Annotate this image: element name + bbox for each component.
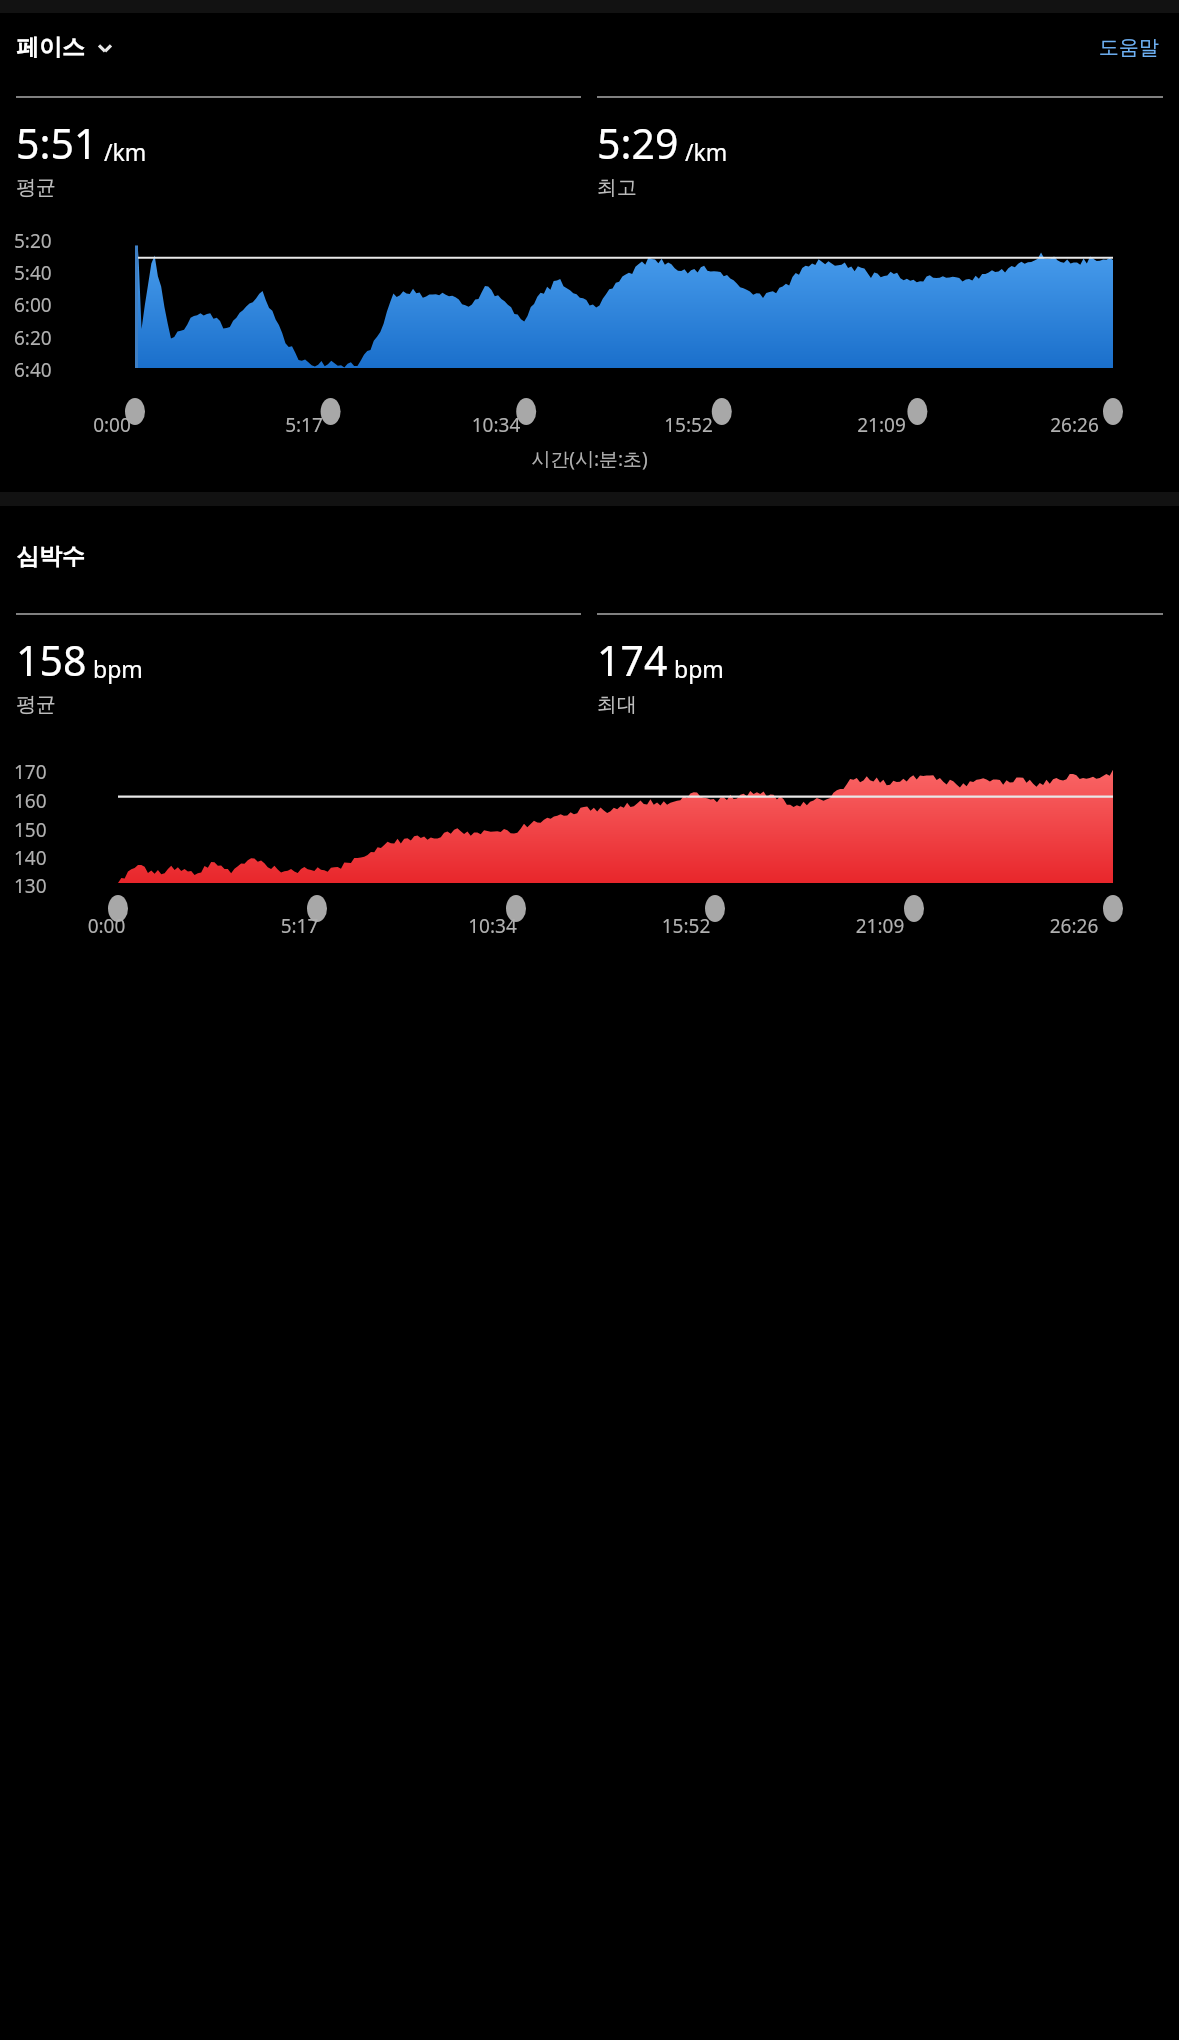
staticText: 160	[14, 788, 47, 814]
staticText: 15:52	[589, 913, 783, 939]
staticText: 174	[597, 632, 668, 688]
staticText: 0:00	[16, 412, 208, 438]
staticText: bpm	[674, 653, 724, 684]
staticText: 10:34	[400, 412, 592, 438]
staticText: 최대	[597, 692, 637, 717]
staticText: 0:00	[10, 913, 203, 939]
staticText: 26:26	[977, 913, 1171, 939]
staticText: 26:26	[978, 412, 1171, 438]
button[interactable]: 도움말	[1095, 29, 1163, 66]
staticText: 15:52	[592, 412, 785, 438]
staticText: 시간(시:분:초)	[0, 446, 1179, 472]
staticText: 130	[14, 873, 47, 899]
staticText: 5:20	[14, 228, 52, 254]
staticText: 5:51	[16, 115, 98, 171]
staticText: 21:09	[785, 412, 978, 438]
staticText: 페이스	[16, 33, 85, 62]
staticText: bpm	[93, 653, 143, 684]
staticText: /km	[685, 136, 728, 167]
staticText: 평균	[16, 692, 56, 717]
staticText: 6:00	[14, 292, 52, 318]
staticText: 170	[14, 759, 47, 785]
button[interactable]: 페이스	[16, 27, 115, 68]
staticText: 150	[14, 817, 47, 843]
staticText: 5:17	[208, 412, 400, 438]
button[interactable]: 심박수	[0, 540, 1179, 573]
staticText: 5:17	[203, 913, 396, 939]
staticText: 도움말	[1099, 35, 1159, 60]
staticText: 6:40	[14, 357, 52, 383]
staticText: 5:40	[14, 260, 52, 286]
staticText: 158	[16, 632, 87, 688]
staticText: /km	[104, 136, 147, 167]
staticText: 평균	[16, 175, 56, 200]
staticText: 21:09	[783, 913, 977, 939]
staticText: 6:20	[14, 325, 52, 351]
staticText: 최고	[597, 175, 637, 200]
staticText: 5:29	[597, 115, 679, 171]
staticText: 심박수	[16, 542, 85, 571]
staticText: 10:34	[396, 913, 589, 939]
staticText: 140	[14, 845, 47, 871]
